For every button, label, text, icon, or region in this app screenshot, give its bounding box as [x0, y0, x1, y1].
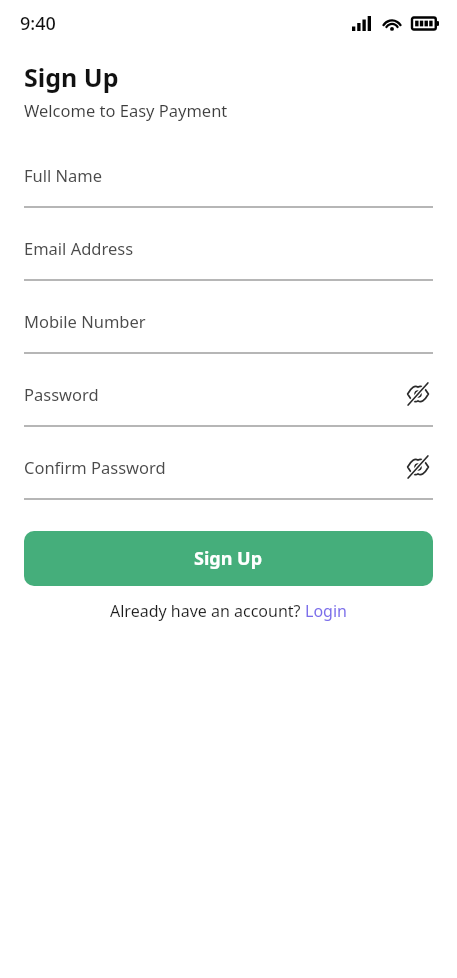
staticText: Email Address: [24, 237, 134, 259]
button[interactable]: Sign Up: [24, 531, 433, 586]
button[interactable]: Confirm Password: [24, 454, 433, 480]
button[interactable]: Full Name: [24, 162, 433, 188]
button[interactable]: Password: [24, 381, 433, 407]
button[interactable]: Login: [305, 600, 347, 622]
button[interactable]: Email Address: [24, 235, 433, 261]
staticText: Password: [24, 383, 99, 405]
staticText: Sign Up: [194, 546, 263, 571]
staticText: Sign Up: [24, 60, 119, 94]
staticText: Login: [305, 600, 347, 622]
staticText: Already have an account?: [110, 600, 305, 622]
button[interactable]: Mobile Number: [24, 308, 433, 334]
staticText: Full Name: [24, 164, 103, 186]
staticText: Mobile Number: [24, 310, 146, 332]
staticText: 9:40: [20, 11, 56, 36]
button[interactable]: Show password: [403, 454, 433, 480]
button[interactable]: Show password: [403, 381, 433, 407]
staticText: Welcome to Easy Payment: [24, 99, 228, 121]
staticText: Confirm Password: [24, 456, 166, 478]
